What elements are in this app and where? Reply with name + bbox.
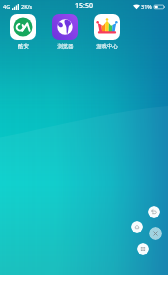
staticText: 31%	[141, 3, 152, 10]
button[interactable]: Recents	[137, 243, 149, 255]
staticText: 酷安	[18, 43, 29, 50]
staticText: 游戏中心	[96, 43, 118, 50]
button[interactable]: 游戏中心	[86, 14, 128, 50]
staticText: 4G	[3, 3, 11, 10]
button[interactable]: 酷安	[2, 14, 44, 50]
staticText: 15:50	[75, 1, 93, 11]
staticText: 2K/s	[21, 3, 33, 10]
button[interactable]: Home	[131, 221, 143, 233]
button[interactable]: Back	[148, 206, 160, 218]
button[interactable]: 浏览器	[44, 14, 86, 50]
staticText: 浏览器	[57, 43, 74, 50]
button[interactable]: Close	[149, 227, 162, 240]
